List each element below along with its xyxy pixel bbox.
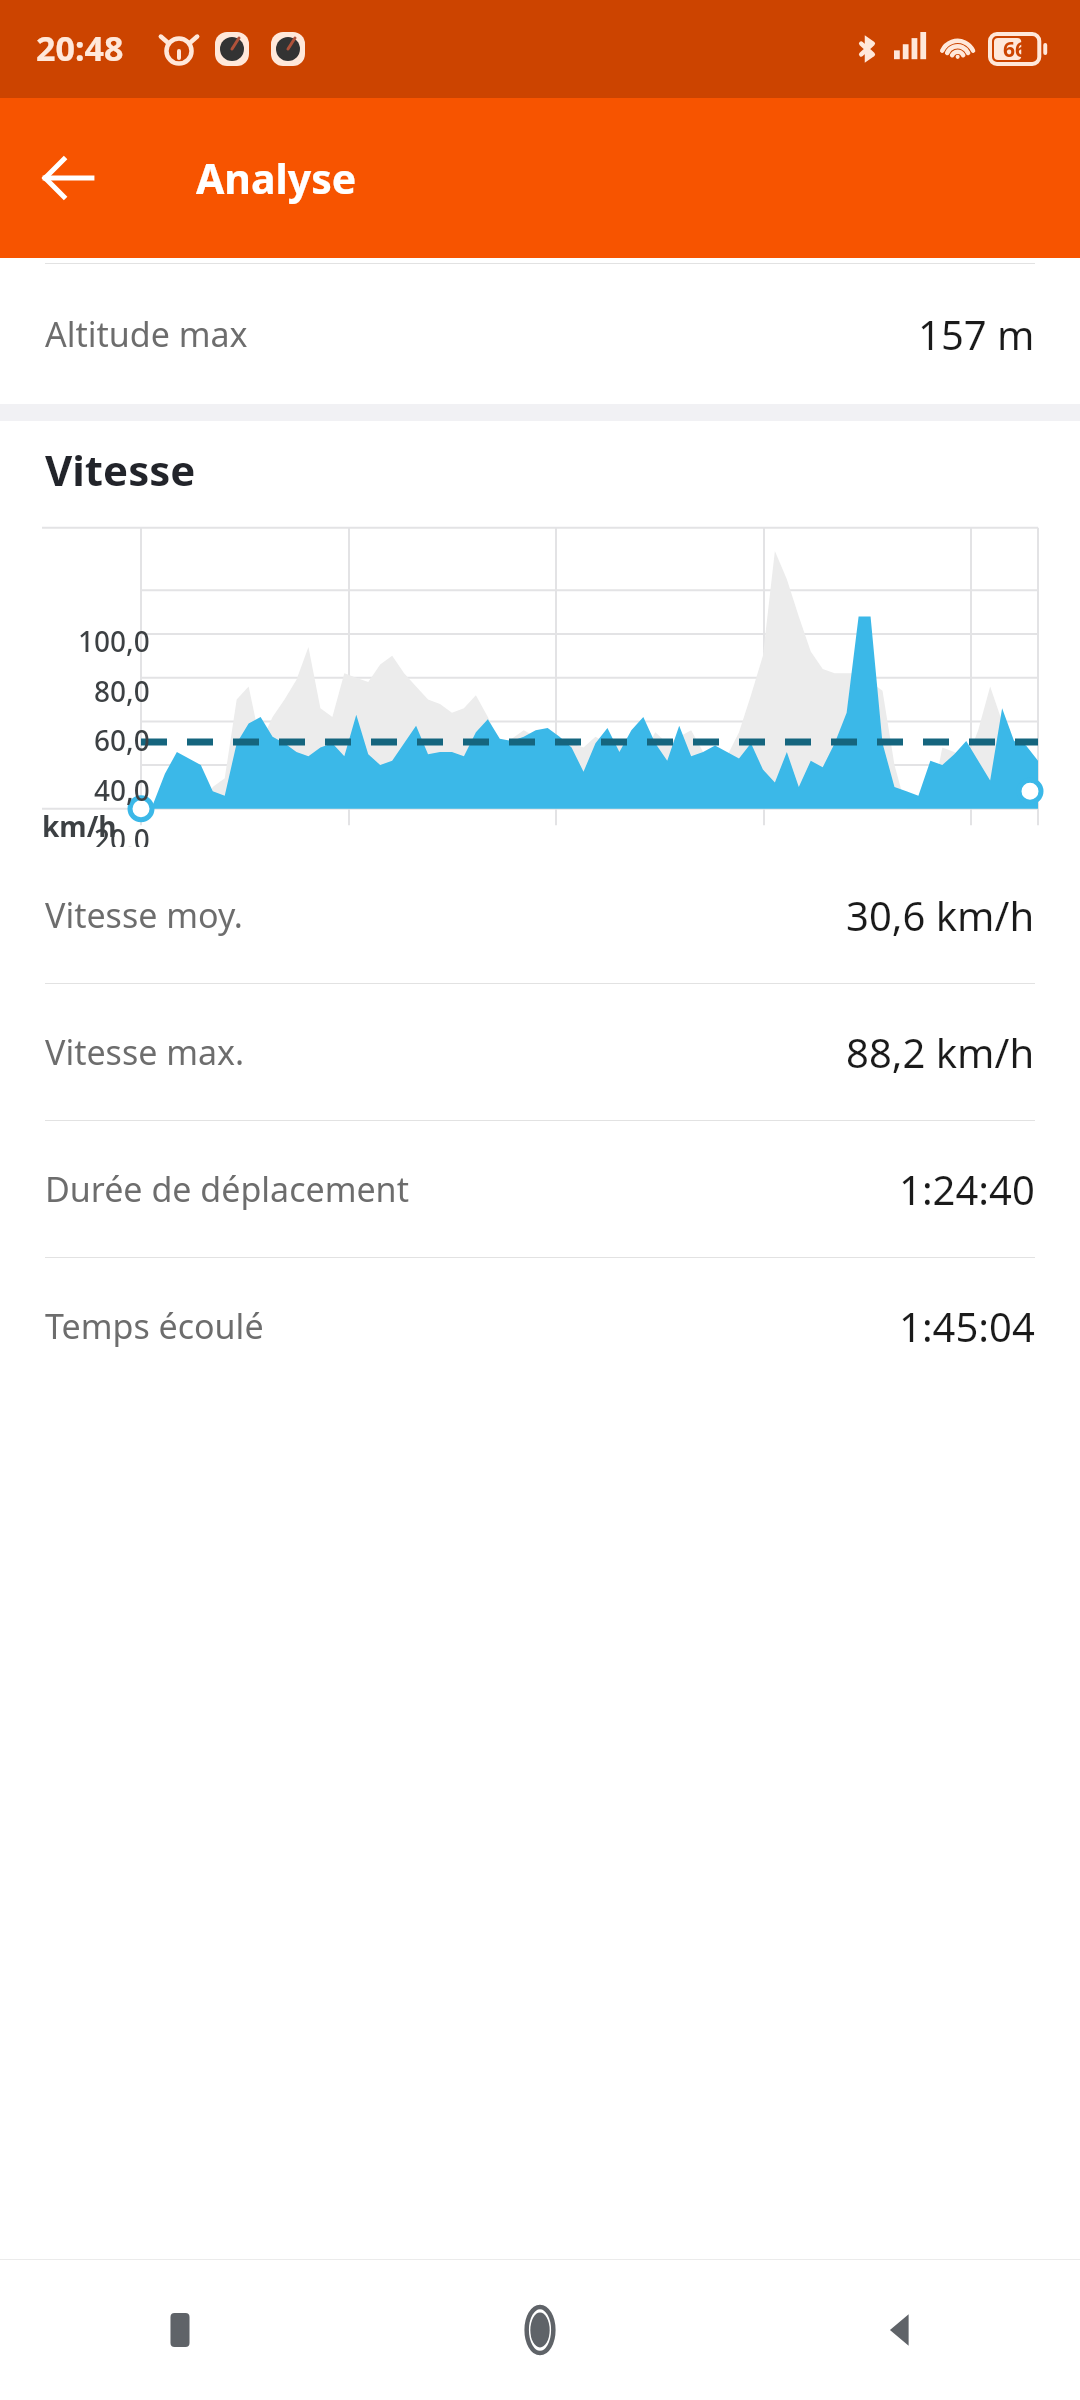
staticText: Analyse — [196, 150, 357, 206]
staticText: 20,0 — [94, 820, 150, 858]
button[interactable]: Back — [720, 2260, 1080, 2400]
staticText: 40,0 — [94, 771, 150, 809]
staticText: Vitesse — [45, 441, 196, 498]
staticText: Temps écoulé — [45, 1303, 264, 1349]
button[interactable]: Recent apps — [0, 2260, 360, 2400]
staticText: 20:48 — [36, 25, 124, 71]
button[interactable]: Home — [360, 2260, 720, 2400]
staticText: 157 m — [918, 307, 1035, 361]
staticText: 1:24:40 — [899, 1162, 1035, 1216]
staticText: Vitesse max. — [45, 1029, 245, 1075]
button[interactable]: Temps écoulé — [0, 1257, 1080, 1394]
button[interactable]: Back — [26, 136, 110, 220]
button[interactable]: Vitesse max. — [0, 983, 1080, 1120]
staticText: 88,2 km/h — [846, 1025, 1035, 1079]
staticText: 30,6 km/h — [846, 888, 1035, 942]
button[interactable]: Durée de déplacement — [0, 1120, 1080, 1257]
staticText: km/h — [42, 807, 117, 845]
staticText: 60,0 — [94, 721, 150, 759]
button[interactable]: Vitesse moy. — [0, 847, 1080, 983]
staticText: Vitesse moy. — [45, 892, 243, 938]
staticText: 100,0 — [78, 622, 150, 660]
button[interactable]: Altitude max — [0, 263, 1080, 404]
staticText: Durée de déplacement — [45, 1166, 409, 1212]
staticText: 1:45:04 — [899, 1299, 1035, 1353]
staticText: 66 — [1003, 35, 1028, 64]
staticText: 80,0 — [94, 672, 150, 710]
staticText: Altitude max — [45, 311, 248, 357]
